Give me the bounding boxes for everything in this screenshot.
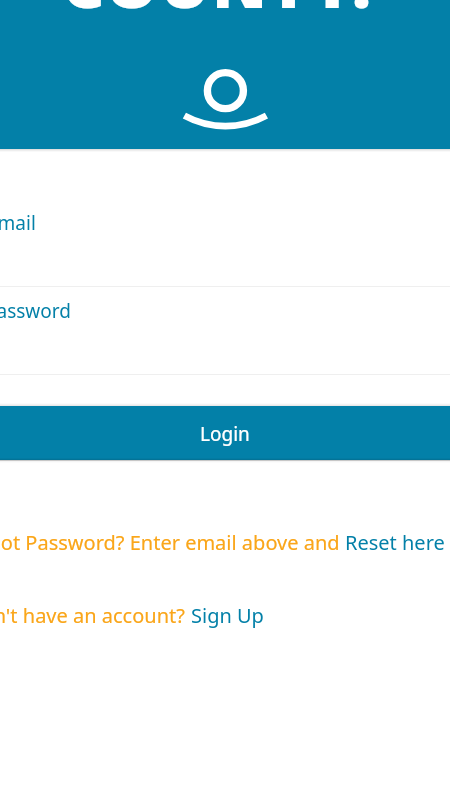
staticText: Forgot Password? Enter email above and xyxy=(0,529,345,556)
button[interactable]: Reset here xyxy=(345,529,445,556)
staticText: Email xyxy=(0,210,36,236)
staticText: COUNTY. xyxy=(62,0,374,27)
other: App logo xyxy=(180,60,280,140)
button[interactable]: Login xyxy=(0,406,450,460)
staticText: Password xyxy=(0,298,71,324)
staticText: Don't have an account? xyxy=(0,602,191,629)
button[interactable]: Sign Up xyxy=(191,602,264,629)
button[interactable] xyxy=(0,287,450,374)
button[interactable] xyxy=(0,196,450,286)
staticText: Login xyxy=(200,421,250,447)
